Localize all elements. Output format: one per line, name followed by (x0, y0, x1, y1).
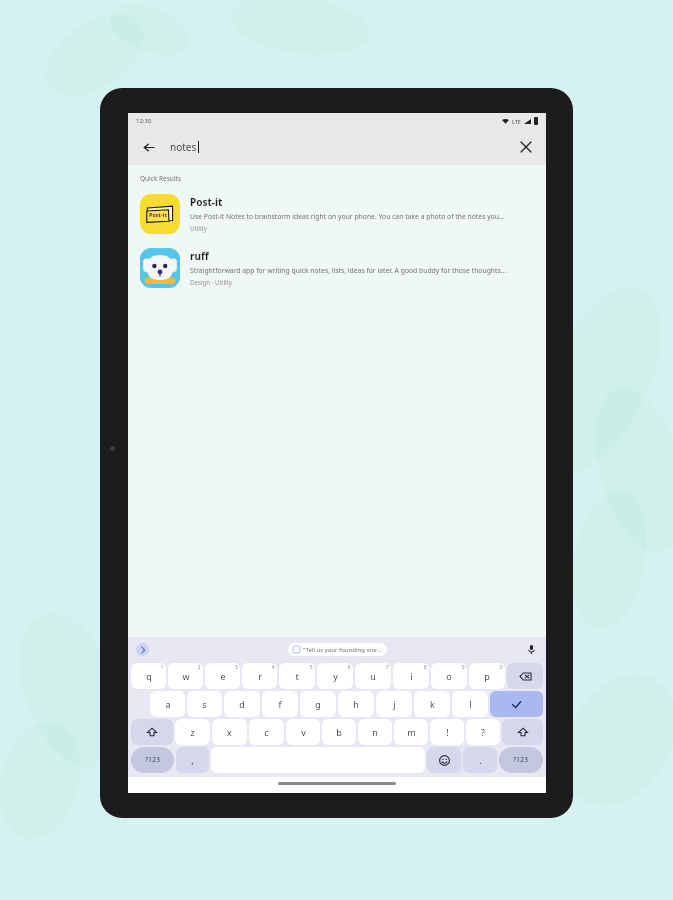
staticText: ?123 (513, 755, 529, 765)
staticText: j (393, 698, 396, 710)
button[interactable]: g (300, 691, 336, 717)
staticText: 6 (348, 664, 351, 670)
staticText: q (146, 670, 152, 682)
staticText: 0 (500, 664, 503, 670)
staticText: Straightforward app for writing quick no… (190, 266, 507, 275)
staticText: v (301, 726, 306, 738)
staticText: u (370, 670, 376, 682)
staticText: , (191, 754, 194, 766)
button[interactable]: ? (466, 719, 500, 745)
staticText: e (220, 670, 226, 682)
button[interactable]: l (452, 691, 488, 717)
button[interactable]: Post-it (128, 189, 546, 239)
staticText: h (353, 698, 359, 710)
staticText: Post-it (190, 195, 223, 209)
button[interactable]: r (242, 663, 277, 689)
button[interactable]: q (131, 663, 166, 689)
staticText: notes (170, 140, 197, 154)
button[interactable]: . (463, 747, 497, 773)
button[interactable]: f (262, 691, 298, 717)
staticText: 8 (424, 664, 427, 670)
staticText: 2 (198, 664, 201, 670)
staticText: s (202, 698, 207, 710)
button[interactable]: h (338, 691, 374, 717)
button[interactable]: v (286, 719, 320, 745)
staticText: b (336, 726, 342, 738)
staticText: ! (446, 726, 449, 738)
staticText: Use Post-it Notes to brainstorm ideas ri… (190, 212, 505, 221)
button[interactable]: w (168, 663, 203, 689)
button[interactable]: o (431, 663, 467, 689)
staticText: Quick Results (140, 174, 182, 183)
button[interactable]: Backspace (507, 663, 543, 689)
button[interactable]: ! (430, 719, 464, 745)
staticText: p (484, 670, 490, 682)
button[interactable]: b (322, 719, 356, 745)
staticText: y (333, 670, 338, 682)
staticText: 3 (235, 664, 238, 670)
staticText: w (182, 670, 190, 682)
staticText: 12:30 (136, 117, 152, 125)
staticText: t (295, 670, 299, 682)
staticText: Post-it (149, 211, 167, 218)
button[interactable]: k (414, 691, 450, 717)
button[interactable]: m (394, 719, 428, 745)
staticText: ? (481, 726, 485, 738)
button[interactable]: Shift (502, 719, 543, 745)
button[interactable]: p (469, 663, 505, 689)
button[interactable]: s (187, 691, 222, 717)
button[interactable]: Shift (131, 719, 173, 745)
staticText: 1 (161, 664, 164, 670)
button[interactable]: ?123 (499, 747, 543, 773)
button[interactable]: Enter (490, 691, 543, 717)
staticText: 4 (272, 664, 275, 670)
button[interactable]: x (212, 719, 247, 745)
button[interactable]: a (150, 691, 185, 717)
button[interactable]: c (249, 719, 284, 745)
button[interactable]: Expand suggestions (136, 643, 149, 656)
button[interactable]: t (279, 663, 315, 689)
staticText: ruff (190, 249, 209, 263)
button[interactable]: e (205, 663, 240, 689)
button[interactable]: i (393, 663, 429, 689)
staticText: Utility (190, 224, 207, 232)
button[interactable]: Clear search (516, 137, 536, 157)
staticText: LTE (512, 118, 521, 125)
staticText: l (469, 698, 472, 710)
staticText: k (430, 698, 435, 710)
staticText: g (315, 698, 321, 710)
staticText: 5 (310, 664, 313, 670)
button[interactable]: ruff (128, 243, 546, 293)
staticText: z (190, 726, 195, 738)
button[interactable]: Voice input (524, 642, 538, 656)
staticText: "Tell us your founding stor... (303, 646, 382, 654)
staticText: c (264, 726, 269, 738)
button[interactable]: ?123 (131, 747, 174, 773)
button[interactable]: Emoji (427, 747, 461, 773)
staticText: r (258, 670, 262, 682)
staticText: . (479, 754, 482, 766)
button[interactable]: , (176, 747, 209, 773)
button[interactable]: u (355, 663, 391, 689)
button[interactable]: "Tell us your founding stor... (288, 643, 387, 656)
staticText: x (227, 726, 232, 738)
staticText: Design · Utility (190, 278, 233, 286)
button[interactable]: z (175, 719, 210, 745)
button[interactable]: d (224, 691, 260, 717)
staticText: m (407, 726, 416, 738)
staticText: i (410, 670, 413, 682)
staticText: d (239, 698, 245, 710)
staticText: n (372, 726, 378, 738)
button[interactable]: j (376, 691, 412, 717)
staticText: 7 (386, 664, 389, 670)
staticText: ?123 (145, 755, 161, 765)
staticText: o (446, 670, 452, 682)
staticText: f (278, 698, 282, 710)
staticText: 9 (462, 664, 465, 670)
button[interactable]: Back (138, 137, 158, 157)
button[interactable]: y (317, 663, 353, 689)
staticText: a (165, 698, 171, 710)
button[interactable]: n (358, 719, 392, 745)
